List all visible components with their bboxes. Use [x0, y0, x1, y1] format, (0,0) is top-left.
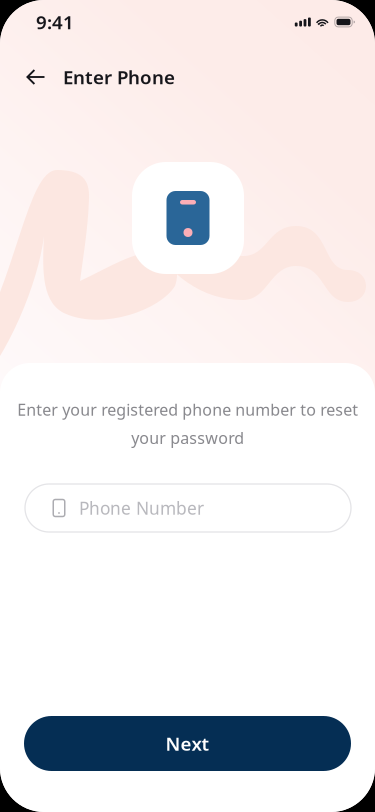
- button[interactable]: Next: [24, 716, 351, 771]
- button[interactable]: Back: [21, 62, 51, 92]
- staticText: your password: [131, 427, 244, 448]
- staticText: Next: [165, 731, 209, 756]
- staticText: Phone Number: [79, 496, 204, 519]
- staticText: Enter your registered phone number to re…: [17, 399, 358, 420]
- staticText: 9:41: [36, 10, 74, 34]
- staticText: Enter Phone: [63, 65, 175, 89]
